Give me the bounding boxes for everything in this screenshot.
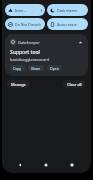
button[interactable]: Home [40, 159, 52, 171]
staticText: basicboggleraccount [10, 57, 50, 62]
button[interactable]: Auto-rotate [47, 18, 88, 30]
button[interactable]: Dark theme [47, 4, 88, 16]
staticText: Dark theme [57, 8, 78, 13]
button[interactable]: Clear all [63, 80, 86, 88]
button[interactable]: Copy [10, 65, 25, 71]
button[interactable]: Internet [5, 4, 45, 16]
staticText: Internet [15, 8, 27, 13]
staticText: Support tool [10, 49, 40, 56]
staticText: Gatekeeper [18, 40, 40, 45]
staticText: Manage [11, 82, 26, 87]
staticText: Clear all [67, 82, 82, 87]
staticText: Copy [13, 66, 22, 71]
button[interactable]: Back [14, 159, 26, 171]
staticText: Do Not Disturb [15, 22, 41, 27]
button[interactable]: Gatekeeper [5, 34, 88, 76]
button[interactable]: Manage [7, 80, 30, 88]
button[interactable]: Share [28, 65, 44, 71]
staticText: Auto-rotate [57, 22, 77, 27]
button[interactable]: Open [47, 65, 62, 71]
staticText: Open [50, 66, 59, 71]
button[interactable]: Recent apps [66, 159, 78, 171]
button[interactable]: Collapse notification [76, 38, 84, 46]
staticText: Share [31, 66, 41, 71]
button[interactable]: Do Not Disturb [5, 18, 45, 30]
